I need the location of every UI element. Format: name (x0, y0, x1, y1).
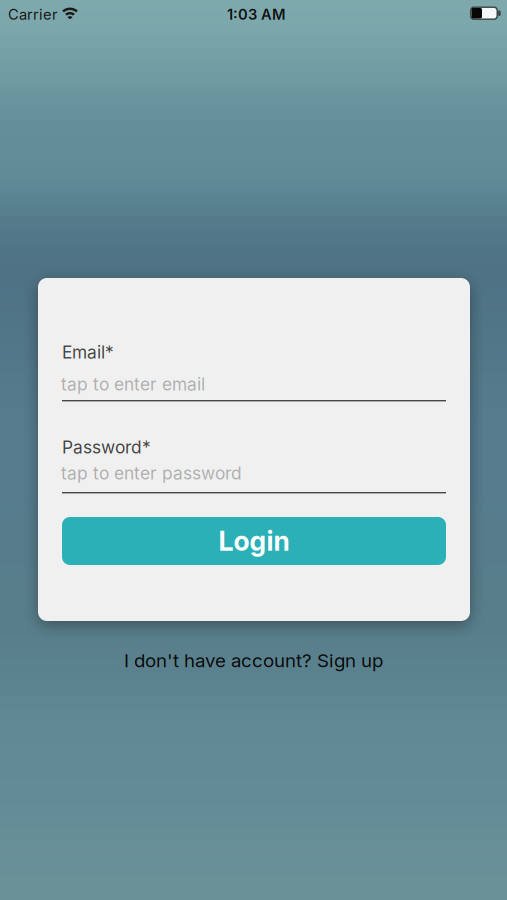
staticText: I don't have account? Sign up (124, 649, 383, 671)
staticText: Email* (62, 342, 114, 362)
button[interactable]: tap to enter email (62, 371, 446, 401)
staticText: tap to enter password (61, 463, 242, 483)
staticText: Login (218, 525, 289, 557)
staticText: Password* (62, 437, 151, 457)
staticText: 1:03 AM (227, 6, 286, 23)
button[interactable]: Login (62, 517, 446, 565)
button[interactable]: tap to enter password (62, 460, 446, 493)
button[interactable]: I don't have account? Sign up (124, 649, 383, 671)
staticText: Carrier (8, 6, 58, 23)
staticText: tap to enter email (61, 374, 205, 394)
